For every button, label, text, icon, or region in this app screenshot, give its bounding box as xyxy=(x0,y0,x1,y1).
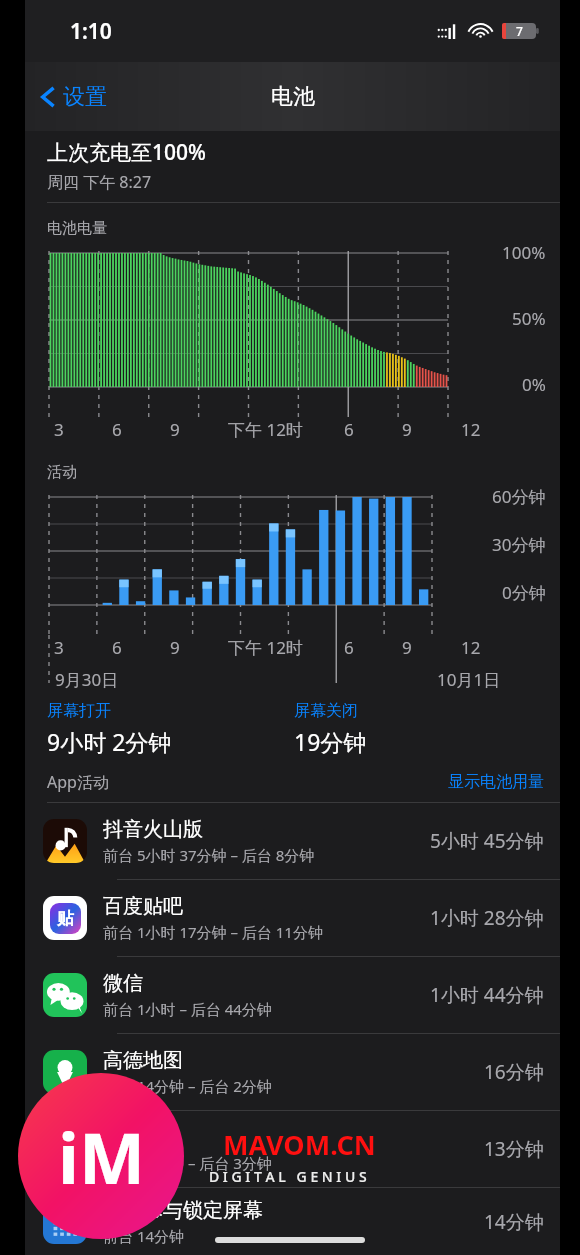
staticText: 9 xyxy=(402,636,412,659)
staticText: 12 xyxy=(461,418,481,441)
staticText: 贴 xyxy=(57,908,74,929)
staticText: 电池 xyxy=(271,83,315,111)
staticText: 6 xyxy=(344,636,354,659)
staticText: 周四 下午 8:27 xyxy=(47,171,152,193)
staticText: 设置 xyxy=(103,1125,143,1150)
staticText: 设置 xyxy=(63,83,107,111)
staticText: 9 xyxy=(402,418,412,441)
staticText: 3 xyxy=(54,418,64,441)
staticText: 主屏幕与锁定屏幕 xyxy=(103,1198,263,1223)
staticText: 屏幕关闭 xyxy=(294,701,358,721)
button[interactable]: 设置 xyxy=(37,77,111,117)
staticText: 上次充电至100% xyxy=(47,138,206,167)
staticText: 下午 12时 xyxy=(228,636,303,659)
staticText: 1小时 44分钟 xyxy=(430,982,544,1008)
staticText: 微信 xyxy=(103,971,143,996)
button[interactable]: 贴 xyxy=(25,880,560,956)
staticText: 前台 1小时 – 后台 44分钟 xyxy=(103,999,272,1019)
other: Cellular signal xyxy=(437,24,459,39)
staticText: 12 xyxy=(461,636,481,659)
staticText: 9 xyxy=(170,418,180,441)
staticText: 1小时 28分钟 xyxy=(430,905,544,931)
button[interactable]: 主屏幕与锁定屏幕 xyxy=(25,1188,560,1255)
staticText: 100% xyxy=(502,241,546,264)
staticText: 高德地图 xyxy=(103,1048,183,1073)
staticText: 16分钟 xyxy=(484,1059,544,1085)
staticText: MAVOM.CN xyxy=(223,1126,376,1163)
staticText: 14分钟 xyxy=(484,1209,544,1235)
staticText: 下午 12时 xyxy=(228,418,303,441)
staticText: 0% xyxy=(522,373,546,396)
staticText: 5小时 45分钟 xyxy=(430,828,544,854)
staticText: 1:10 xyxy=(70,17,112,46)
staticText: 前台 10分钟 – 后台 3分钟 xyxy=(103,1153,272,1173)
staticText: D I G I T A L G E N I U S xyxy=(209,1167,367,1186)
staticText: 6 xyxy=(112,636,122,659)
staticText: 6 xyxy=(344,418,354,441)
staticText: 0分钟 xyxy=(502,581,546,604)
staticText: iM xyxy=(58,1109,145,1204)
button[interactable]: 设置 xyxy=(25,1111,560,1187)
button[interactable]: 显示电池用量 xyxy=(448,772,544,792)
staticText: 9 xyxy=(170,636,180,659)
staticText: 3 xyxy=(54,636,64,659)
staticText: 9月30日 xyxy=(55,668,119,691)
staticText: 前台 5小时 37分钟 – 后台 8分钟 xyxy=(103,845,315,865)
staticText: 30分钟 xyxy=(492,533,546,556)
staticText: 前台 14分钟 xyxy=(103,1226,185,1246)
button[interactable]: 微信 xyxy=(25,957,560,1033)
button[interactable]: 抖音火山版 xyxy=(25,803,560,879)
staticText: 百度贴吧 xyxy=(103,894,183,919)
staticText: 前台 1小时 17分钟 – 后台 11分钟 xyxy=(103,922,323,942)
staticText: 10月1日 xyxy=(437,668,501,691)
staticText: 13分钟 xyxy=(484,1136,544,1162)
staticText: 前台 14分钟 – 后台 2分钟 xyxy=(103,1076,272,1096)
staticText: 7 xyxy=(516,23,523,39)
staticText: 显示电池用量 xyxy=(448,772,544,792)
staticText: 电池电量 xyxy=(47,219,107,238)
staticText: 活动 xyxy=(47,463,77,482)
button[interactable]: 高德地图 xyxy=(25,1034,560,1110)
staticText: 6 xyxy=(112,418,122,441)
staticText: 9小时 2分钟 xyxy=(47,726,172,757)
staticText: 抖音火山版 xyxy=(103,817,203,842)
staticText: 60分钟 xyxy=(492,485,546,508)
staticText: 50% xyxy=(512,307,546,330)
staticText: 19分钟 xyxy=(294,726,367,757)
staticText: 屏幕打开 xyxy=(47,701,111,721)
staticText: App活动 xyxy=(47,771,109,793)
other: Wi-Fi xyxy=(469,23,492,39)
